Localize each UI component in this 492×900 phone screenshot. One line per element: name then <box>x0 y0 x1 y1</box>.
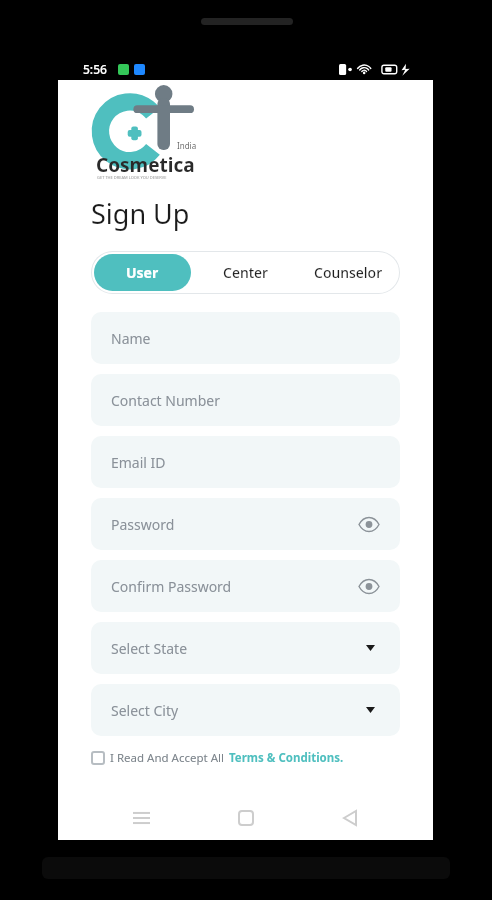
staticText: User <box>126 263 159 282</box>
button[interactable]: Open dropdown <box>360 638 380 658</box>
button[interactable]: Terms & Conditions. <box>229 750 344 766</box>
button[interactable]: Email ID <box>91 436 400 488</box>
staticText: I Read And Accept All <box>110 750 224 766</box>
button[interactable]: Center <box>194 251 297 294</box>
staticText: Sign Up <box>91 195 190 232</box>
button[interactable]: Toggle password visibility <box>356 511 382 537</box>
button[interactable]: User <box>94 254 191 291</box>
button[interactable]: Select State <box>91 622 400 674</box>
staticText: Terms & Conditions. <box>229 750 344 766</box>
staticText: Confirm Password <box>111 577 232 596</box>
staticText: Contact Number <box>111 391 220 410</box>
button[interactable]: Home <box>224 796 268 840</box>
staticText: Counselor <box>314 263 383 282</box>
button[interactable]: Contact Number <box>91 374 400 426</box>
button[interactable]: Name <box>91 312 400 364</box>
button[interactable]: Recent apps <box>119 796 163 840</box>
staticText: GET THE DREAM LOOK YOU DESERVE <box>97 175 167 180</box>
staticText: Email ID <box>111 453 166 472</box>
staticText: Select City <box>111 701 179 720</box>
button[interactable]: Password <box>91 498 400 550</box>
staticText: Cosmetica <box>96 152 195 178</box>
staticText: Name <box>111 329 151 348</box>
button[interactable]: Counselor <box>297 251 400 294</box>
staticText: 5:56 <box>83 61 107 77</box>
button[interactable]: Toggle password visibility <box>356 573 382 599</box>
staticText: Password <box>111 515 175 534</box>
button[interactable]: Open dropdown <box>360 700 380 720</box>
staticText: Center <box>223 263 269 282</box>
button[interactable]: Accept terms checkbox <box>92 752 104 764</box>
button[interactable]: Back <box>328 796 372 840</box>
button[interactable]: Select City <box>91 684 400 736</box>
staticText: India <box>177 140 197 151</box>
staticText: Select State <box>111 639 188 658</box>
button[interactable]: Confirm Password <box>91 560 400 612</box>
